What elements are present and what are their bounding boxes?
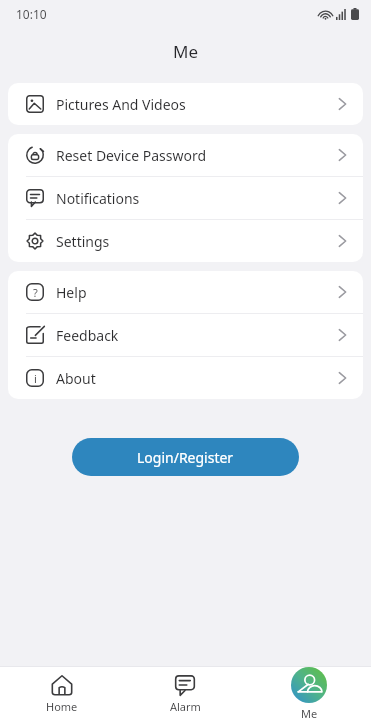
button[interactable]: Feedback (8, 314, 363, 356)
staticText: 10:10 (16, 6, 47, 22)
button[interactable]: Home (0, 667, 123, 720)
button[interactable]: Notifications (8, 177, 363, 219)
button[interactable]: ? (8, 271, 363, 313)
staticText: Pictures And Videos (56, 95, 186, 114)
staticText: About (56, 369, 96, 388)
staticText: Settings (56, 232, 110, 251)
staticText: Login/Register (137, 448, 234, 467)
staticText: Notifications (56, 189, 140, 208)
staticText: Reset Device Password (56, 146, 207, 165)
other: Alarm (174, 674, 196, 696)
button[interactable]: Settings (8, 220, 363, 262)
staticText: Feedback (56, 326, 119, 345)
staticText: Alarm (170, 699, 201, 714)
staticText: Me (173, 40, 199, 63)
button[interactable]: Pictures And Videos (8, 83, 363, 125)
button[interactable]: Login/Register (72, 438, 299, 476)
button[interactable]: i (8, 357, 363, 399)
button[interactable]: Reset Device Password (8, 134, 363, 176)
staticText: Me (301, 706, 318, 720)
staticText: Help (56, 283, 87, 302)
other: Home (51, 674, 73, 696)
button[interactable]: Alarm (123, 667, 247, 720)
button[interactable]: Me (247, 667, 371, 720)
staticText: ? (33, 285, 38, 300)
staticText: Home (46, 699, 78, 714)
other: Me (291, 667, 327, 703)
staticText: i (34, 371, 37, 386)
